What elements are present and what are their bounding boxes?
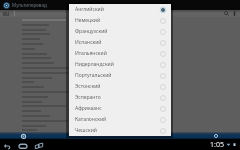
button[interactable]: Эстонский	[69, 81, 171, 92]
button[interactable]: Home	[17, 140, 28, 150]
button[interactable]: Каталонский	[69, 114, 171, 125]
staticText: Эсперанто	[75, 94, 101, 101]
button[interactable]: Search	[223, 10, 230, 17]
button[interactable]: Back	[1, 140, 12, 150]
button[interactable]: Немецкий	[69, 15, 171, 26]
staticText: Мультиперевод	[12, 2, 47, 8]
button[interactable]: Чешский	[69, 125, 171, 136]
staticText: Итальянский	[75, 50, 107, 57]
button[interactable]: Испанский	[69, 37, 171, 48]
staticText: Африкаанс	[75, 105, 102, 112]
button[interactable]: Эсперанто	[69, 92, 171, 103]
button[interactable]: Португальский	[69, 70, 171, 81]
button[interactable]: Recent apps	[33, 140, 44, 150]
button[interactable]: Итальянский	[69, 48, 171, 59]
staticText: RU	[3, 11, 10, 17]
staticText: Эстонский	[75, 83, 101, 90]
staticText: Каталонский	[75, 116, 107, 123]
staticText: Немецкий	[75, 17, 100, 24]
staticText: Португальский	[75, 72, 112, 79]
button[interactable]: Английский	[69, 4, 171, 15]
button[interactable]: More options	[231, 10, 238, 17]
staticText: Английский	[75, 6, 104, 13]
button[interactable]: Нидерландский	[69, 59, 171, 70]
staticText: Французский	[75, 28, 108, 35]
staticText: 1:05	[210, 140, 224, 150]
staticText: Нидерландский	[75, 61, 114, 68]
button[interactable]: Французский	[69, 26, 171, 37]
staticText: Чешский	[75, 127, 97, 134]
staticText: Испанский	[75, 39, 102, 46]
button[interactable]: Африкаанс	[69, 103, 171, 114]
